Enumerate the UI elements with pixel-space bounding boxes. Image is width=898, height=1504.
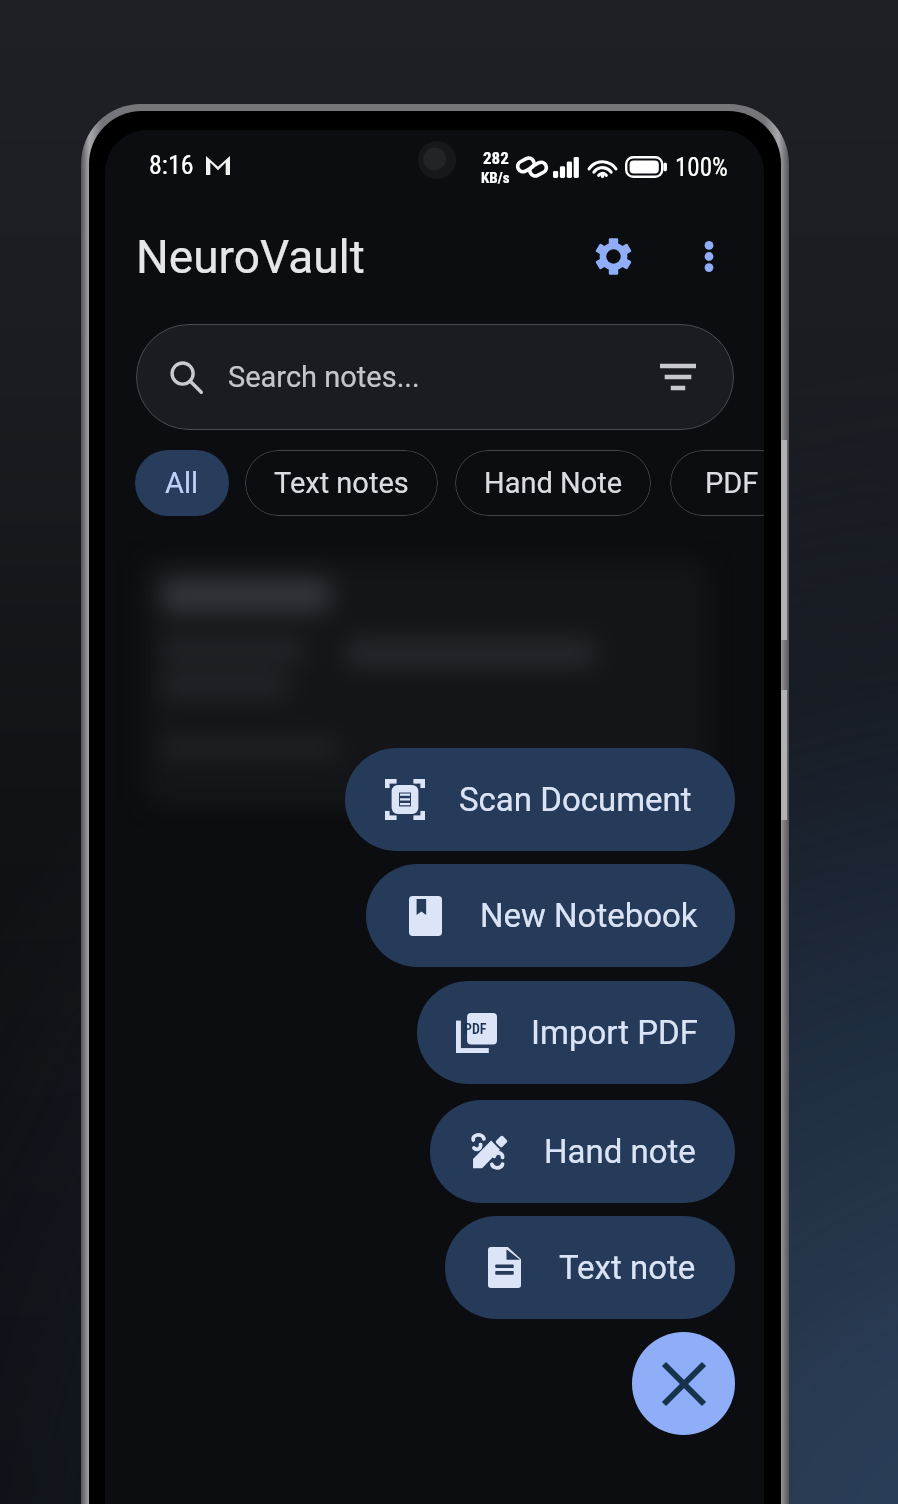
- button[interactable]: New Notebook: [366, 864, 735, 967]
- staticText: PDF: [464, 1021, 487, 1037]
- staticText: Hand note: [544, 1132, 696, 1171]
- staticText: NeuroVault: [136, 230, 365, 284]
- button[interactable]: Hand Note: [455, 450, 651, 516]
- button[interactable]: Scan Document: [345, 748, 735, 851]
- staticText: Import PDF: [531, 1013, 698, 1052]
- staticText: KB/s: [481, 169, 510, 187]
- button[interactable]: Close menu: [632, 1332, 735, 1435]
- staticText: 282: [483, 148, 509, 168]
- button[interactable]: Hand note: [430, 1100, 735, 1203]
- button[interactable]: PDF: [670, 450, 764, 516]
- button[interactable]: More options: [678, 225, 740, 287]
- staticText: Text note: [559, 1248, 696, 1287]
- button[interactable]: Text notes: [245, 450, 438, 516]
- staticText: Search notes...: [228, 360, 420, 394]
- staticText: PDF: [705, 466, 759, 500]
- staticText: All: [165, 466, 199, 500]
- button[interactable]: Settings: [579, 222, 647, 290]
- button[interactable]: Search notes...: [136, 324, 734, 430]
- staticText: Scan Document: [459, 780, 692, 819]
- button[interactable]: PDF: [417, 981, 735, 1084]
- button[interactable]: All: [135, 450, 229, 516]
- staticText: New Notebook: [480, 896, 698, 935]
- button[interactable]: Text note: [445, 1216, 735, 1319]
- staticText: 100%: [675, 153, 728, 182]
- staticText: 8:16: [149, 150, 194, 180]
- staticText: Text notes: [274, 466, 409, 500]
- staticText: Hand Note: [484, 466, 623, 500]
